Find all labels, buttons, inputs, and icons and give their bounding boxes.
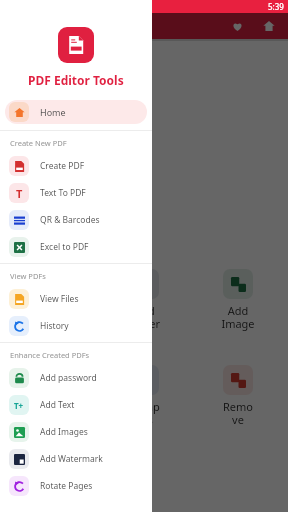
button[interactable]: Rotate Pages xyxy=(0,472,152,499)
staticText: View Files xyxy=(40,293,79,305)
button[interactable]: Excel to PDF xyxy=(0,233,152,260)
staticText: Comp ess xyxy=(129,399,160,427)
staticText: QR & Barcodes xyxy=(40,214,100,226)
staticText: Add password xyxy=(40,372,97,384)
button[interactable]: History xyxy=(0,312,152,339)
button[interactable]: Favourites xyxy=(226,15,248,37)
staticText: Text To PDF xyxy=(40,187,86,199)
staticText: History xyxy=(40,320,69,332)
button[interactable]: T+ xyxy=(0,391,152,418)
staticText: Rotate Pages xyxy=(40,480,93,492)
button[interactable]: View Files xyxy=(0,285,152,312)
staticText: Excel to PDF xyxy=(40,241,89,253)
staticText: Create PDF xyxy=(40,160,85,172)
staticText: Remo ve xyxy=(223,399,253,427)
staticText: T xyxy=(16,186,23,201)
staticText: Add Watermark xyxy=(40,453,103,465)
staticText: PDF Editor Tools xyxy=(28,72,124,88)
staticText: Add Water xyxy=(129,303,160,331)
button[interactable]: Create PDF xyxy=(0,152,152,179)
button[interactable]: T xyxy=(0,179,152,206)
button[interactable]: Home xyxy=(258,15,280,37)
staticText: 5:39 xyxy=(268,1,284,12)
staticText: Home xyxy=(40,106,66,118)
button[interactable]: QR & Barcodes xyxy=(0,206,152,233)
button[interactable]: Add Watermark xyxy=(0,445,152,472)
staticText: Excel to xyxy=(38,129,65,157)
staticText: Add Images xyxy=(40,426,88,438)
staticText: Add Image xyxy=(221,303,255,331)
staticText: Enhance Created PDFs xyxy=(10,350,90,360)
staticText: Create New PDF xyxy=(10,138,67,148)
button[interactable]: Home xyxy=(5,100,147,124)
button[interactable]: Add password xyxy=(0,364,152,391)
button[interactable]: Add Images xyxy=(0,418,152,445)
staticText: View PDFs xyxy=(10,271,46,281)
staticText: Add Text xyxy=(40,399,75,411)
staticText: T+ xyxy=(14,400,24,411)
